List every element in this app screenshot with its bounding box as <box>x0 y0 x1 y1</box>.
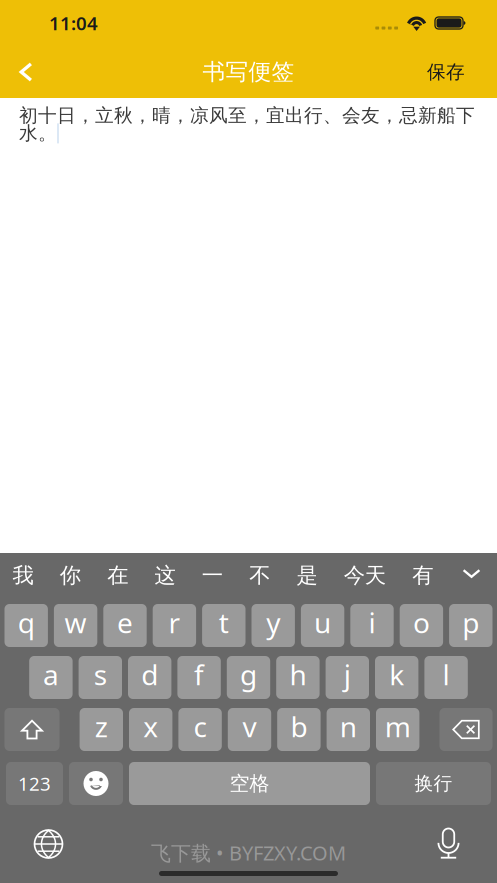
button[interactable]: 保存 <box>420 49 472 95</box>
button[interactable]: m <box>376 708 419 751</box>
staticText: z <box>95 708 108 745</box>
button[interactable]: z <box>80 708 123 751</box>
staticText: o <box>413 604 430 641</box>
staticText: d <box>141 656 158 693</box>
staticText: 我 <box>12 562 33 589</box>
staticText: s <box>94 656 107 693</box>
staticText: 在 <box>107 562 128 589</box>
button[interactable]: 你 <box>60 556 81 601</box>
staticText: 空格 <box>229 771 269 796</box>
button[interactable]: n <box>327 708 370 751</box>
staticText: r <box>168 604 180 641</box>
button[interactable]: 不 <box>249 556 270 601</box>
button[interactable]: q <box>4 604 48 647</box>
staticText: 你 <box>60 562 81 589</box>
button[interactable]: 123 <box>6 762 63 805</box>
staticText: 有 <box>412 562 433 589</box>
button[interactable]: t <box>202 604 245 647</box>
staticText: t <box>219 604 229 641</box>
staticText: 不 <box>249 562 270 589</box>
button[interactable]: g <box>227 656 270 699</box>
button[interactable]: 我 <box>12 556 33 601</box>
staticText: v <box>242 708 256 745</box>
staticText: 飞下载 • BYFZXY.COM <box>151 839 346 866</box>
button[interactable]: Back <box>6 49 46 95</box>
button[interactable]: p <box>449 604 492 647</box>
staticText: 保存 <box>427 60 465 83</box>
button[interactable]: 是 <box>296 556 317 601</box>
button[interactable]: o <box>400 604 443 647</box>
staticText: y <box>266 604 280 641</box>
button[interactable]: Hide keyboard <box>459 556 483 601</box>
button[interactable]: r <box>153 604 196 647</box>
button[interactable]: Dictation <box>417 816 479 872</box>
staticText: k <box>389 656 404 693</box>
staticText: l <box>443 656 450 693</box>
button[interactable]: 在 <box>107 556 128 601</box>
staticText: e <box>117 604 133 641</box>
staticText: n <box>340 708 357 745</box>
staticText: u <box>314 604 331 641</box>
button[interactable]: 今天 <box>344 556 386 601</box>
button[interactable]: f <box>177 656 221 699</box>
button[interactable]: u <box>301 604 344 647</box>
button[interactable]: b <box>277 708 321 751</box>
button[interactable]: l <box>424 656 468 699</box>
button[interactable]: Emoji <box>69 762 123 805</box>
button[interactable]: Delete <box>439 708 492 751</box>
staticText: 是 <box>296 562 317 589</box>
button[interactable]: 一 <box>202 556 223 601</box>
button[interactable]: 空格 <box>129 762 370 805</box>
button[interactable]: 这 <box>154 556 175 601</box>
button[interactable]: s <box>79 656 122 699</box>
button[interactable]: Switch keyboard <box>17 816 79 872</box>
button[interactable]: 有 <box>412 556 433 601</box>
staticText: w <box>65 604 87 641</box>
staticText: p <box>462 604 479 641</box>
staticText: c <box>194 708 207 745</box>
staticText: 换行 <box>414 772 452 795</box>
button[interactable]: x <box>129 708 172 751</box>
button[interactable]: i <box>350 604 394 647</box>
staticText: x <box>143 708 158 745</box>
staticText: b <box>290 708 307 745</box>
staticText: h <box>289 656 306 693</box>
staticText: 水。 <box>19 122 57 145</box>
staticText: g <box>240 656 257 693</box>
staticText: m <box>385 708 411 745</box>
button[interactable]: y <box>251 604 295 647</box>
button[interactable]: k <box>375 656 418 699</box>
staticText: q <box>18 604 35 641</box>
button[interactable]: v <box>228 708 271 751</box>
button[interactable]: 换行 <box>376 762 491 805</box>
staticText: 书写便签 <box>202 58 294 86</box>
staticText: 123 <box>18 771 51 796</box>
button[interactable]: a <box>29 656 73 699</box>
staticText: f <box>194 656 204 693</box>
staticText: 这 <box>154 562 175 589</box>
button[interactable]: j <box>326 656 369 699</box>
staticText: 初十日，立秋，晴，凉风至，宜出行、会友，忌新船下 <box>19 104 475 127</box>
staticText: 一 <box>202 562 223 589</box>
button[interactable]: e <box>103 604 147 647</box>
button[interactable]: c <box>178 708 222 751</box>
button[interactable]: w <box>54 604 97 647</box>
staticText: j <box>344 656 351 693</box>
staticText: 11:04 <box>49 11 98 35</box>
staticText: i <box>368 604 375 641</box>
button[interactable]: h <box>276 656 320 699</box>
staticText: a <box>43 656 59 693</box>
button[interactable]: Shift <box>4 708 59 751</box>
button[interactable]: d <box>128 656 171 699</box>
staticText: 今天 <box>344 562 386 589</box>
